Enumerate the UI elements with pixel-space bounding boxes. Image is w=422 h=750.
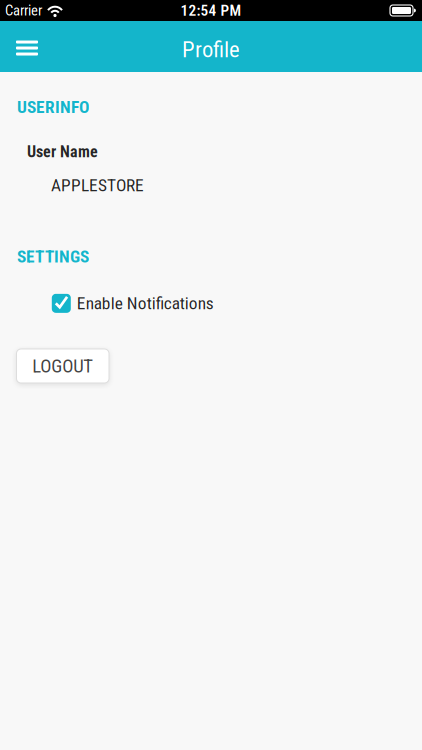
staticText: Profile <box>182 36 240 63</box>
staticText: USERINFO <box>17 97 89 117</box>
staticText: LOGOUT <box>32 355 93 377</box>
staticText: User Name <box>27 142 98 161</box>
staticText: Enable Notifications <box>77 293 214 313</box>
staticText: Carrier <box>5 2 42 19</box>
staticText: APPLESTORE <box>51 175 144 195</box>
staticText: SETTINGS <box>17 246 89 267</box>
button[interactable]: LOGOUT <box>16 349 109 383</box>
staticText: 12:54 PM <box>180 1 241 19</box>
button[interactable]: Menu <box>0 21 38 72</box>
button[interactable]: Enable Notifications <box>52 293 214 313</box>
